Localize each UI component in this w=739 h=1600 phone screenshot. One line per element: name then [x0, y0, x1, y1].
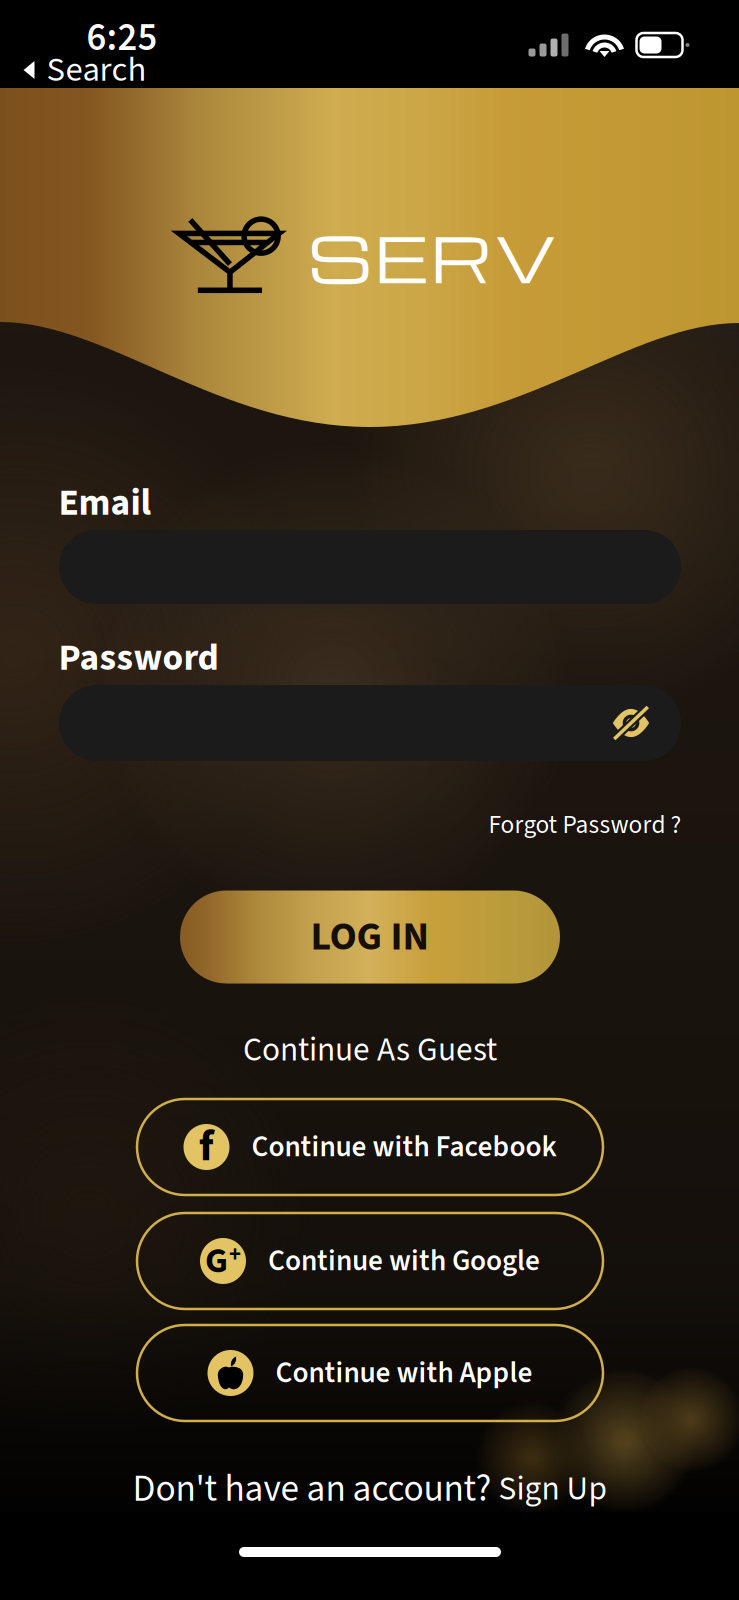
- staticText: Don't have an account?: [132, 1462, 498, 1516]
- button[interactable]: Search: [22, 42, 146, 98]
- button[interactable]: G: [137, 1213, 603, 1309]
- staticText: Search: [46, 45, 146, 95]
- staticText: Forgot Password ?: [488, 807, 681, 843]
- button[interactable]: Continue with Apple: [137, 1325, 603, 1421]
- staticText: +: [229, 1238, 241, 1271]
- staticText: LOG IN: [310, 908, 429, 965]
- staticText: Continue with Google: [268, 1240, 540, 1282]
- button[interactable]: Forgot Password ?: [486, 799, 683, 851]
- button[interactable]: Show password: [611, 687, 681, 759]
- staticText: Password: [58, 631, 218, 685]
- staticText: 6:25: [86, 10, 157, 66]
- button[interactable]: f: [137, 1099, 603, 1195]
- button[interactable]: Continue As Guest: [243, 1018, 497, 1082]
- staticText: Sign Up: [498, 1465, 607, 1513]
- button[interactable]: LOG IN: [180, 890, 560, 983]
- staticText: SERV: [308, 212, 556, 300]
- staticText: G: [205, 1235, 228, 1287]
- staticText: Continue As Guest: [243, 1026, 497, 1074]
- button[interactable]: Sign Up: [498, 1465, 607, 1513]
- staticText: f: [199, 1117, 214, 1177]
- staticText: Continue with Apple: [275, 1352, 532, 1394]
- staticText: Email: [58, 476, 151, 530]
- staticText: Continue with Facebook: [251, 1126, 556, 1168]
